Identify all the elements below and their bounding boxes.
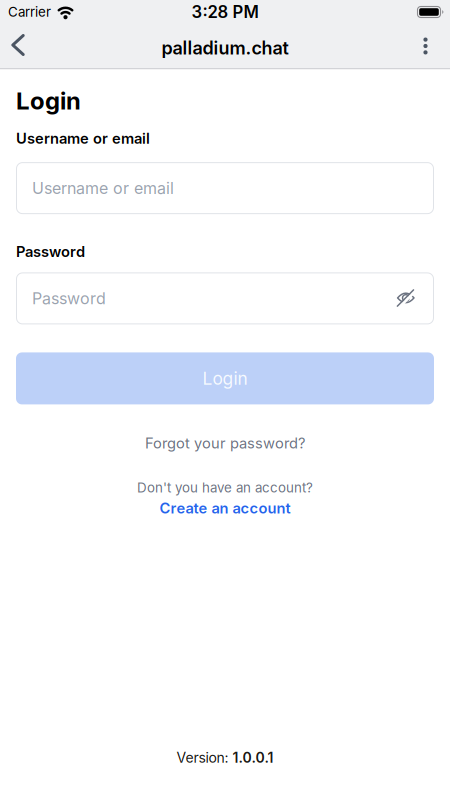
staticText: 3:28 PM — [191, 2, 258, 22]
staticText: Don't you have an account? — [137, 480, 313, 495]
staticText: Username or email — [32, 179, 174, 198]
staticText: palladium.chat — [161, 37, 288, 59]
staticText: Password — [16, 243, 85, 260]
button[interactable]: More options — [423, 28, 450, 68]
staticText: Version: 1.0.0.1 — [176, 749, 273, 766]
staticText: Password — [32, 289, 106, 308]
button[interactable]: Forgot your password? — [16, 430, 434, 456]
button[interactable]: Login — [16, 352, 434, 404]
textField[interactable]: Password — [16, 272, 434, 324]
button[interactable]: Show password — [388, 281, 422, 315]
staticText: Login — [16, 86, 81, 115]
button[interactable]: Create an account — [16, 497, 434, 519]
staticText: Create an account — [159, 499, 290, 517]
staticText: Forgot your password? — [145, 434, 305, 452]
staticText: Carrier — [8, 4, 51, 20]
staticText: Login — [202, 368, 247, 389]
button[interactable]: Back — [0, 28, 25, 68]
textField[interactable]: Username or email — [16, 162, 434, 214]
staticText: Username or email — [16, 130, 150, 147]
